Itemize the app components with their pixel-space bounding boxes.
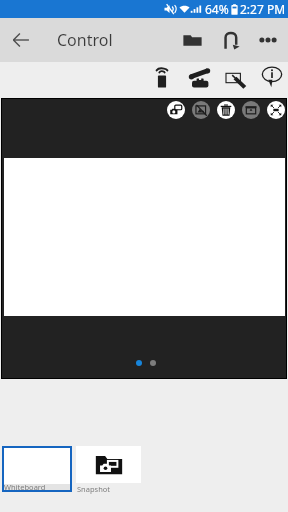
- button[interactable]: Whiteboard: [221, 64, 249, 92]
- button[interactable]: More options: [254, 26, 282, 54]
- staticText: 64%: [205, 1, 229, 17]
- button[interactable]: [76, 446, 141, 483]
- button[interactable]: Folder: [178, 26, 206, 54]
- staticText: Snapshot: [77, 484, 111, 494]
- staticText: Whiteboard: [4, 482, 46, 492]
- button[interactable]: Info: [258, 63, 286, 91]
- button[interactable]: Take screenshot: [167, 101, 185, 119]
- button[interactable]: Remote control: [148, 64, 176, 92]
- button[interactable]: Present: [242, 101, 260, 119]
- button[interactable]: Gallery: [192, 101, 210, 119]
- staticText: 2:27 PM: [240, 1, 286, 17]
- button[interactable]: Back: [7, 26, 35, 54]
- button[interactable]: Call: [186, 64, 214, 92]
- button[interactable]: Whiteboard: [2, 446, 72, 492]
- button[interactable]: Redo: [216, 26, 244, 54]
- button[interactable]: Delete: [217, 101, 235, 119]
- staticText: Control: [57, 29, 113, 51]
- button[interactable]: Fullscreen: [267, 101, 285, 119]
